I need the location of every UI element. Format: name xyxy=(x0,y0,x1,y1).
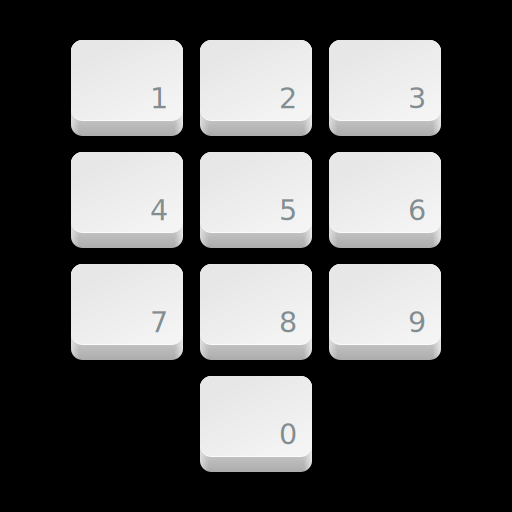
staticText: 2 xyxy=(279,82,297,115)
button[interactable]: 5 xyxy=(200,152,312,248)
staticText: 4 xyxy=(150,194,168,227)
button[interactable]: 9 xyxy=(329,264,441,360)
staticText: 5 xyxy=(279,194,297,227)
staticText: 3 xyxy=(408,82,426,115)
button[interactable]: 3 xyxy=(329,40,441,136)
button[interactable]: 4 xyxy=(71,152,183,248)
button[interactable]: 8 xyxy=(200,264,312,360)
staticText: 9 xyxy=(408,306,426,339)
button[interactable]: 6 xyxy=(329,152,441,248)
button[interactable]: 2 xyxy=(200,40,312,136)
button[interactable]: 1 xyxy=(71,40,183,136)
button[interactable]: 7 xyxy=(71,264,183,360)
staticText: 8 xyxy=(279,306,297,339)
staticText: 0 xyxy=(279,418,297,451)
staticText: 7 xyxy=(150,306,168,339)
staticText: 6 xyxy=(408,194,426,227)
button[interactable]: 0 xyxy=(200,376,312,472)
staticText: 1 xyxy=(150,82,168,115)
